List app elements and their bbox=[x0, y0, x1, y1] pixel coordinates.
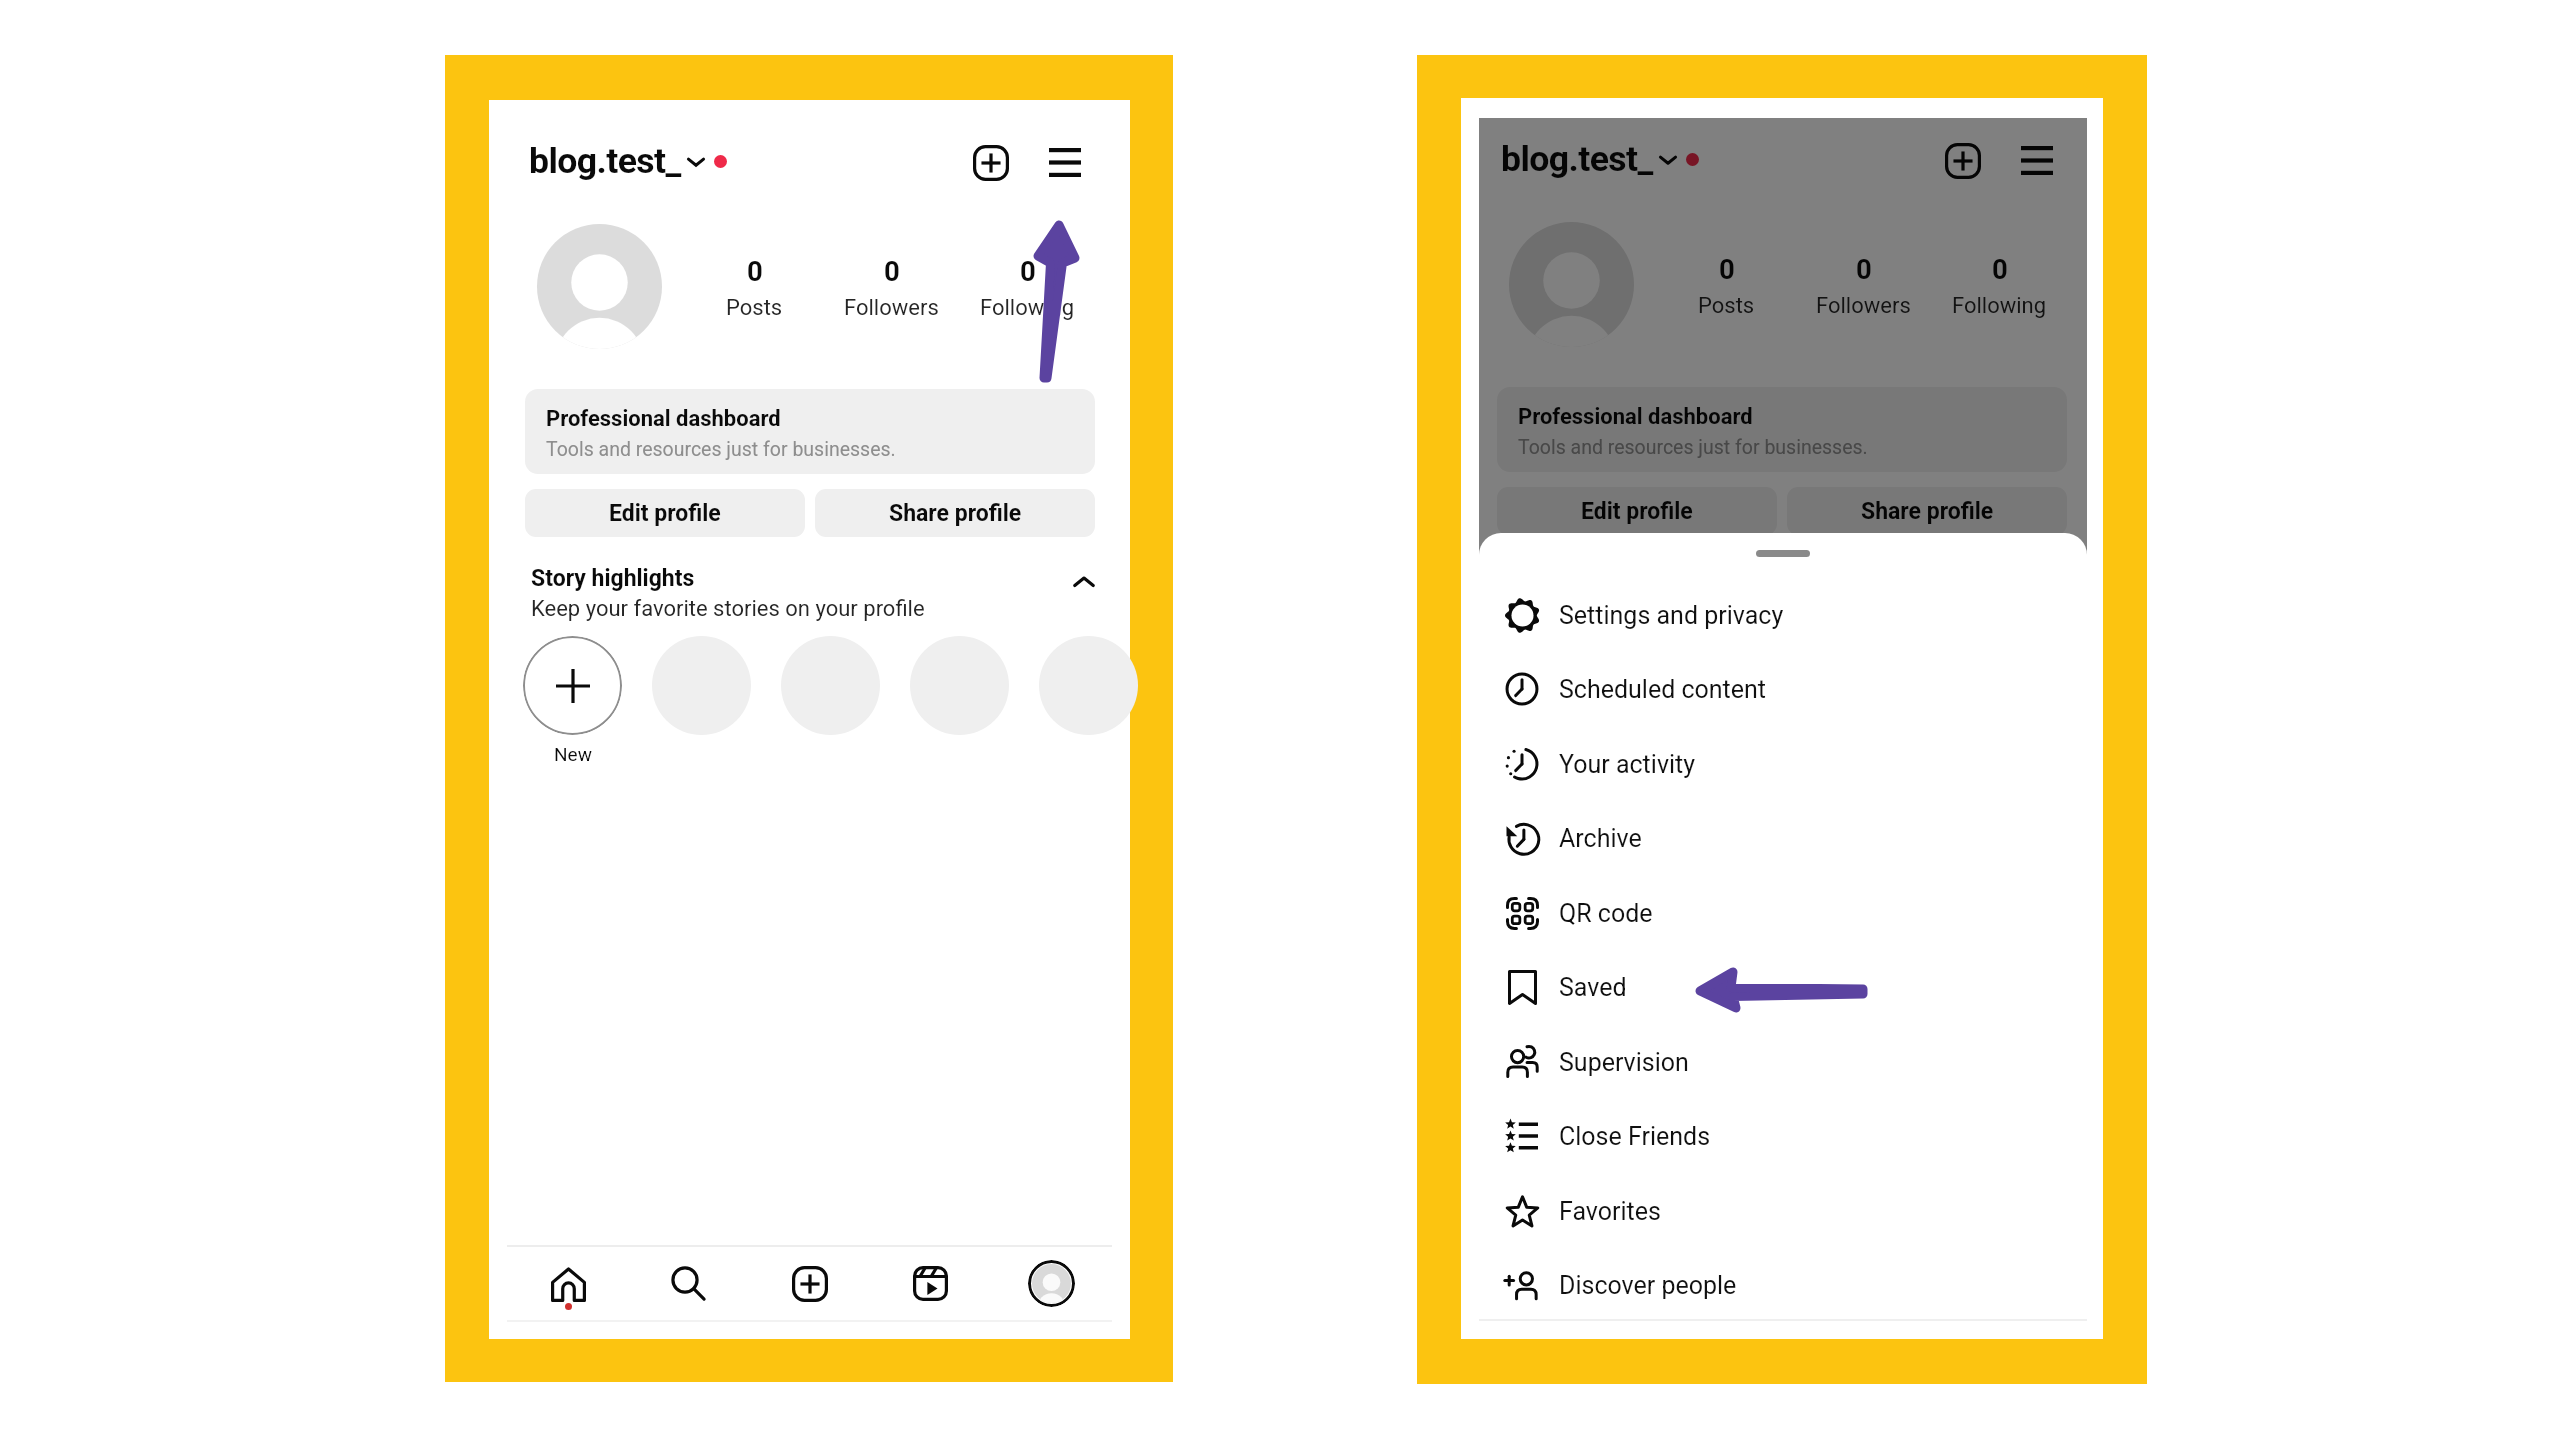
staticText: Edit profile bbox=[1581, 498, 1693, 525]
button[interactable]: Discover people bbox=[1479, 1248, 2087, 1321]
staticText: Tools and resources just for businesses. bbox=[1518, 436, 1868, 459]
button[interactable]: Story highlights bbox=[531, 561, 1095, 633]
button[interactable]: Settings and privacy bbox=[1479, 578, 2087, 652]
button[interactable]: Reels bbox=[870, 1247, 991, 1320]
button[interactable]: Profile photo bbox=[1509, 222, 1634, 347]
staticText: Professional dashboard bbox=[546, 406, 781, 432]
button[interactable]: Story highlight bbox=[652, 636, 751, 735]
staticText: Scheduled content bbox=[1559, 675, 1767, 704]
button[interactable]: Create bbox=[961, 133, 1020, 192]
staticText: Following bbox=[980, 295, 1075, 321]
staticText: Close Friends bbox=[1559, 1122, 1711, 1151]
staticText: 0 bbox=[1020, 255, 1036, 287]
button[interactable]: 0 bbox=[1656, 253, 1796, 323]
button[interactable]: Menu bbox=[1035, 133, 1094, 192]
staticText: 0 bbox=[747, 255, 763, 287]
staticText: Supervision bbox=[1559, 1048, 1689, 1077]
staticText: blog.test_ bbox=[1501, 138, 1653, 180]
button[interactable]: Create bbox=[1933, 131, 1992, 190]
button[interactable]: Archive bbox=[1479, 801, 2087, 875]
button[interactable]: Professional dashboard bbox=[1497, 387, 2067, 472]
staticText: 0 bbox=[884, 255, 900, 287]
staticText: Story highlights bbox=[531, 565, 695, 592]
button[interactable]: Edit profile bbox=[1497, 487, 1777, 535]
staticText: Posts bbox=[1698, 293, 1755, 319]
staticText: Keep your favorite stories on your profi… bbox=[531, 596, 925, 622]
button[interactable]: Professional dashboard bbox=[525, 389, 1095, 474]
button[interactable]: Favorites bbox=[1479, 1174, 2087, 1248]
button[interactable]: Scheduled content bbox=[1479, 652, 2087, 726]
staticText: Discover people bbox=[1559, 1271, 1737, 1300]
button[interactable]: 0 bbox=[684, 255, 824, 325]
staticText: Tools and resources just for businesses. bbox=[546, 438, 896, 461]
staticText: blog.test_ bbox=[529, 140, 681, 182]
button[interactable]: Close Friends bbox=[1479, 1099, 2087, 1173]
button[interactable]: Story highlight bbox=[910, 636, 1009, 735]
staticText: Archive bbox=[1559, 824, 1642, 853]
button[interactable]: Search bbox=[628, 1247, 749, 1320]
staticText: 0 bbox=[1856, 253, 1872, 285]
button[interactable]: Supervision bbox=[1479, 1025, 2087, 1099]
staticText: Share profile bbox=[1861, 498, 1994, 525]
button[interactable]: Profile bbox=[991, 1247, 1112, 1320]
staticText: Professional dashboard bbox=[1518, 404, 1753, 430]
staticText: 0 bbox=[1719, 253, 1735, 285]
staticText: Followers bbox=[1816, 293, 1911, 319]
staticText: Posts bbox=[726, 295, 783, 321]
staticText: Your activity bbox=[1559, 750, 1696, 779]
button[interactable]: New highlight bbox=[523, 636, 622, 735]
staticText: Saved bbox=[1559, 973, 1627, 1002]
staticText: Share profile bbox=[889, 500, 1022, 527]
button[interactable]: Your activity bbox=[1479, 727, 2087, 801]
button[interactable]: blog.test_ bbox=[529, 140, 729, 184]
button[interactable]: Create bbox=[749, 1247, 870, 1320]
button[interactable]: 0 bbox=[1929, 253, 2069, 323]
staticText: New bbox=[554, 743, 592, 765]
button[interactable]: Saved bbox=[1479, 950, 2087, 1024]
button[interactable]: 0 bbox=[957, 255, 1097, 325]
staticText: Edit profile bbox=[609, 500, 721, 527]
button[interactable]: Home bbox=[507, 1247, 628, 1320]
staticText: Settings and privacy bbox=[1559, 601, 1784, 630]
button[interactable]: 0 bbox=[821, 255, 961, 325]
button[interactable]: Menu bbox=[2007, 131, 2066, 190]
button[interactable]: Profile photo bbox=[537, 224, 662, 349]
staticText: Favorites bbox=[1559, 1197, 1661, 1226]
button[interactable]: QR code bbox=[1479, 876, 2087, 950]
button[interactable]: Story highlight bbox=[781, 636, 880, 735]
button[interactable]: Edit profile bbox=[525, 489, 805, 537]
staticText: Following bbox=[1952, 293, 2047, 319]
staticText: 0 bbox=[1992, 253, 2008, 285]
button[interactable]: Share profile bbox=[1787, 487, 2067, 535]
staticText: QR code bbox=[1559, 899, 1653, 928]
button[interactable]: 0 bbox=[1793, 253, 1933, 323]
button[interactable]: Share profile bbox=[815, 489, 1095, 537]
button[interactable]: blog.test_ bbox=[1501, 138, 1701, 182]
button[interactable]: Story highlight bbox=[1039, 636, 1138, 735]
staticText: Followers bbox=[844, 295, 939, 321]
